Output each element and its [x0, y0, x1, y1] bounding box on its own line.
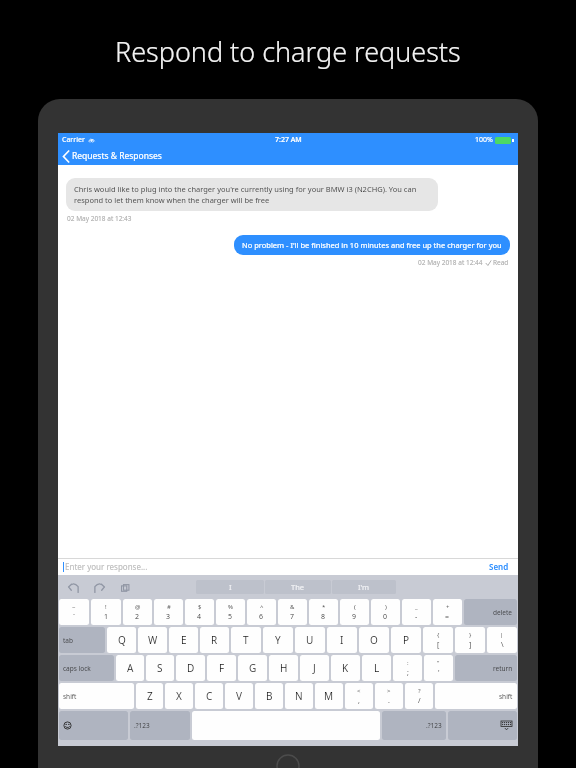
button[interactable]: |	[487, 627, 517, 653]
button[interactable]: .?123	[382, 711, 446, 740]
button[interactable]: M	[315, 683, 343, 709]
staticText: {	[437, 631, 440, 639]
button[interactable]: Send	[485, 559, 513, 574]
staticText: ^	[260, 603, 264, 611]
staticText: B	[266, 689, 273, 703]
staticText: @	[135, 603, 141, 611]
staticText: &	[290, 603, 295, 611]
button[interactable]: ~	[59, 599, 89, 625]
button[interactable]: Requests & Responses	[58, 148, 168, 164]
staticText: Respond to charge requests	[115, 33, 461, 70]
button[interactable]: )	[371, 599, 400, 625]
staticText: 1	[104, 612, 109, 622]
button[interactable]: Undo	[66, 580, 80, 594]
staticText: -	[415, 612, 418, 622]
staticText: return	[493, 664, 513, 673]
staticText: .?123	[134, 721, 150, 730]
button[interactable]: F	[207, 655, 236, 681]
button[interactable]: The	[265, 580, 331, 594]
staticText: F	[219, 661, 225, 675]
button[interactable]: B	[255, 683, 283, 709]
staticText: 9	[352, 612, 357, 622]
button[interactable]: Chris would like to plug into the charge…	[66, 178, 438, 211]
staticText: "	[437, 659, 440, 667]
button[interactable]: Y	[263, 627, 293, 653]
button[interactable]: <	[345, 683, 373, 709]
button[interactable]: {	[423, 627, 453, 653]
staticText: 0	[383, 612, 388, 622]
button[interactable]: &	[278, 599, 307, 625]
staticText: X	[176, 689, 182, 703]
button[interactable]: U	[295, 627, 325, 653]
button[interactable]: K	[331, 655, 360, 681]
staticText: 7	[290, 612, 295, 622]
staticText: Q	[118, 633, 126, 647]
button[interactable]: (	[340, 599, 369, 625]
staticText: delete	[493, 608, 513, 617]
staticText: :	[407, 659, 409, 667]
button[interactable]: W	[138, 627, 167, 653]
button[interactable]: X	[165, 683, 193, 709]
button[interactable]: V	[225, 683, 253, 709]
button[interactable]: @	[123, 599, 152, 625]
button[interactable]: "	[424, 655, 453, 681]
button[interactable]: #	[154, 599, 183, 625]
button[interactable]: Redo	[92, 580, 106, 594]
staticText: 100%	[475, 135, 493, 145]
button[interactable]: R	[200, 627, 229, 653]
button[interactable]: I	[196, 580, 264, 594]
button[interactable]: C	[195, 683, 223, 709]
staticText: 2	[135, 612, 140, 622]
staticText: L	[374, 661, 380, 675]
button[interactable]: !	[91, 599, 121, 625]
button[interactable]: .?123	[130, 711, 190, 740]
staticText: =	[445, 612, 450, 622]
button[interactable]: :	[393, 655, 422, 681]
button[interactable]: E	[169, 627, 198, 653]
button[interactable]: S	[146, 655, 174, 681]
button[interactable]: No problem - I'll be finished in 10 minu…	[234, 235, 510, 255]
button[interactable]: caps lock	[59, 655, 114, 681]
button[interactable]: G	[238, 655, 267, 681]
button[interactable]: Z	[136, 683, 163, 709]
button[interactable]: A	[116, 655, 144, 681]
button[interactable]: Emoji	[59, 711, 128, 740]
button[interactable]: P	[391, 627, 421, 653]
button[interactable]: tab	[59, 627, 105, 653]
button[interactable]: delete	[464, 599, 517, 625]
button[interactable]: _	[402, 599, 431, 625]
button[interactable]: $	[185, 599, 214, 625]
button[interactable]: N	[285, 683, 313, 709]
button[interactable]: D	[176, 655, 205, 681]
staticText: tab	[63, 636, 73, 645]
button[interactable]: shift	[435, 683, 517, 709]
button[interactable]: J	[300, 655, 329, 681]
staticText: 7:27 AM	[275, 135, 302, 145]
button[interactable]: %	[216, 599, 245, 625]
staticText: M	[324, 689, 334, 703]
button[interactable]: *	[309, 599, 338, 625]
button[interactable]: Paste	[118, 580, 132, 594]
staticText: shift	[63, 692, 77, 701]
staticText: R	[211, 633, 218, 647]
button[interactable]: Q	[107, 627, 136, 653]
staticText: E	[181, 633, 187, 647]
staticText: ?	[418, 687, 421, 695]
button[interactable]: T	[231, 627, 261, 653]
button[interactable]: Hide keyboard	[448, 711, 517, 740]
button[interactable]: ?	[405, 683, 433, 709]
button[interactable]: >	[375, 683, 403, 709]
button[interactable]: H	[269, 655, 298, 681]
staticText: 3	[166, 612, 171, 622]
button[interactable]: O	[359, 627, 389, 653]
button[interactable]: L	[362, 655, 391, 681]
staticText: shift	[499, 692, 513, 701]
button[interactable]: ^	[247, 599, 276, 625]
button[interactable]: I'm	[332, 580, 396, 594]
button[interactable]: return	[455, 655, 517, 681]
button[interactable]: +	[433, 599, 462, 625]
button[interactable]: }	[455, 627, 485, 653]
button[interactable]: I	[327, 627, 357, 653]
button[interactable]: shift	[59, 683, 134, 709]
